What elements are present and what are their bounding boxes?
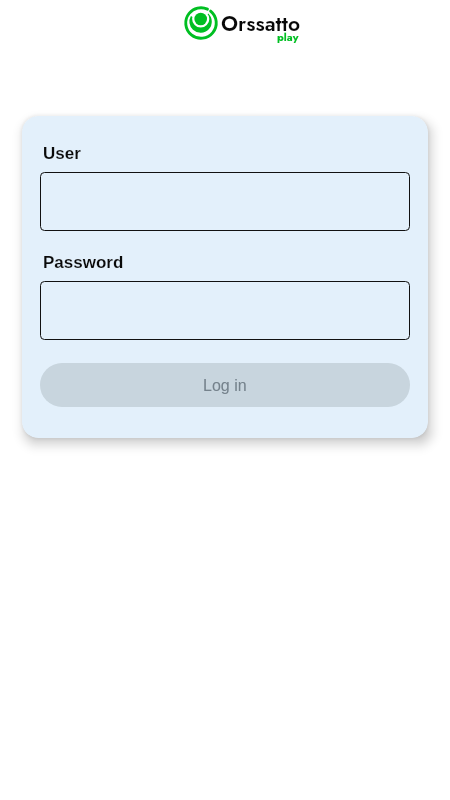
- button[interactable]: Log in: [40, 363, 410, 407]
- button[interactable]: User input field: [40, 172, 410, 231]
- staticText: Log in: [203, 377, 247, 395]
- staticText: User: [43, 144, 81, 163]
- staticText: play: [277, 29, 299, 45]
- staticText: Password: [43, 253, 124, 272]
- staticText: Orssatto: [221, 9, 301, 39]
- button[interactable]: Password input field: [40, 281, 410, 340]
